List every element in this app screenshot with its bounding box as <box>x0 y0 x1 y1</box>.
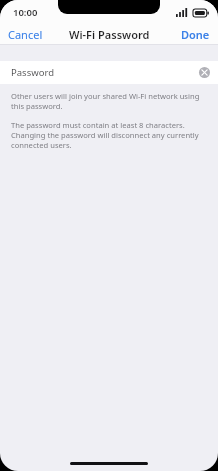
staticText: 10:00 <box>13 6 38 19</box>
staticText: The password must contain at least 8 cha… <box>11 120 207 150</box>
button[interactable]: Password <box>0 61 218 84</box>
staticText: Done <box>181 27 210 42</box>
button[interactable]: Done <box>173 24 218 45</box>
button[interactable]: Clear text <box>198 66 211 79</box>
button[interactable]: Cancel <box>0 24 51 45</box>
staticText: Other users will join your shared Wi-Fi … <box>11 91 203 111</box>
staticText: Password <box>11 66 54 79</box>
staticText: Wi-Fi Password <box>69 27 150 42</box>
staticText: Cancel <box>8 27 43 42</box>
